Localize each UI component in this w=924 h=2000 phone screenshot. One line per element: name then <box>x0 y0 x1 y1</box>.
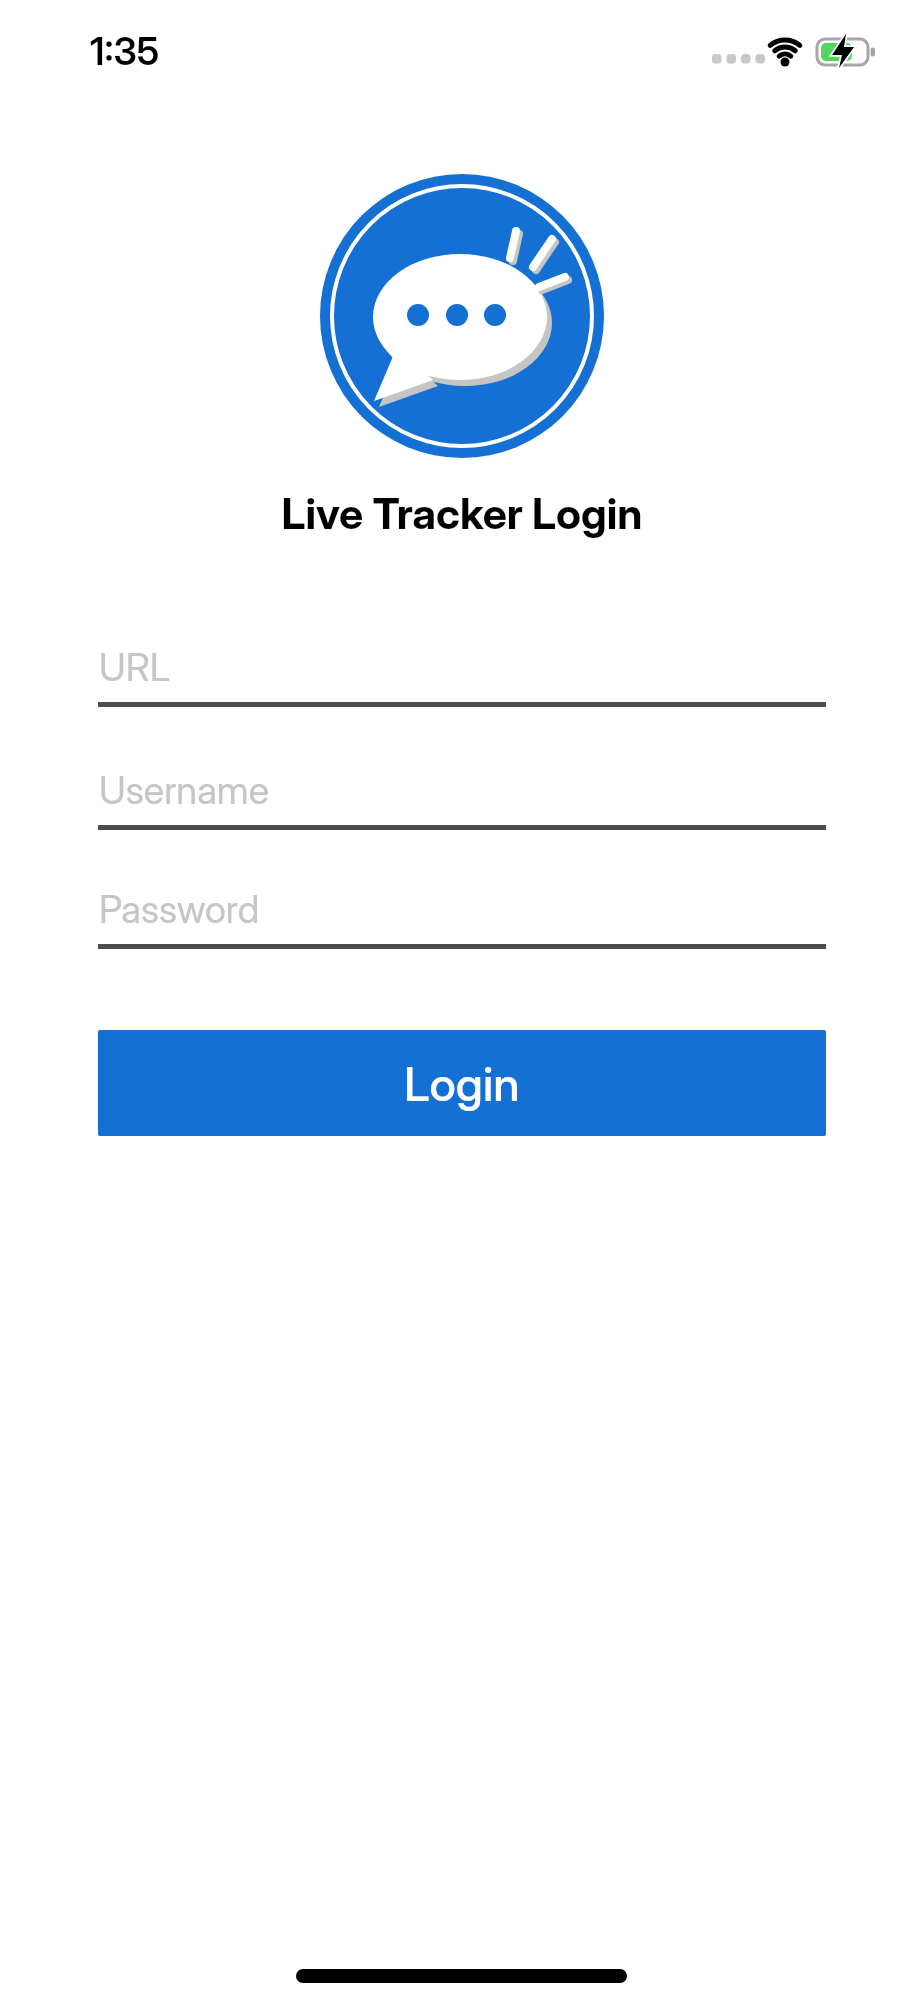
button[interactable]: Username <box>98 757 826 830</box>
staticText: Live Tracker Login <box>0 487 924 539</box>
staticText: 1:35 <box>90 28 160 74</box>
button[interactable]: URL <box>98 634 826 707</box>
staticText: Username <box>99 767 270 813</box>
button[interactable]: Password <box>98 876 826 949</box>
staticText: Password <box>99 886 260 932</box>
staticText: URL <box>99 644 171 690</box>
staticText: Login <box>404 1055 520 1112</box>
button[interactable]: Login <box>98 1030 826 1136</box>
